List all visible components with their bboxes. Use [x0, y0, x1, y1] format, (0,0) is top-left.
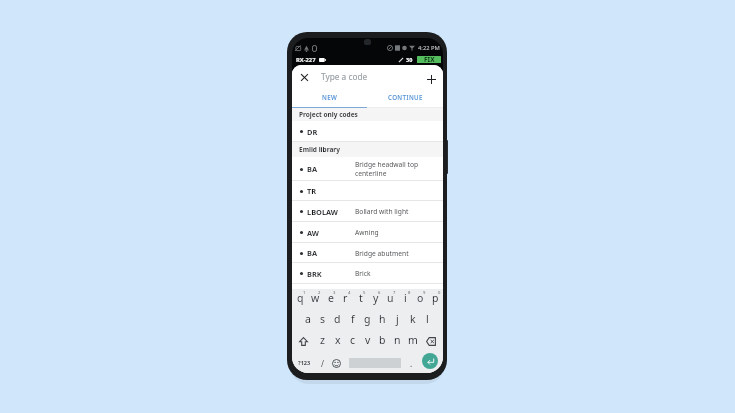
staticText: .: [410, 358, 413, 369]
button[interactable]: BA: [292, 243, 443, 263]
button[interactable]: t: [353, 289, 368, 310]
button[interactable]: v: [360, 331, 375, 353]
staticText: i: [404, 291, 407, 305]
staticText: a: [305, 312, 311, 326]
button[interactable]: n: [390, 331, 405, 353]
button[interactable]: .: [401, 353, 419, 373]
button[interactable]: a: [300, 310, 315, 331]
staticText: NEW: [322, 93, 338, 101]
button[interactable]: s: [315, 310, 330, 331]
staticText: z: [320, 333, 325, 347]
staticText: g: [364, 312, 371, 326]
staticText: 7: [393, 290, 396, 296]
staticText: 2: [318, 290, 321, 296]
button[interactable]: i: [398, 289, 413, 310]
staticText: y: [373, 291, 379, 305]
staticText: TR: [307, 186, 355, 196]
button[interactable]: ?123: [292, 353, 316, 373]
button[interactable]: NEW: [292, 88, 367, 107]
button[interactable]: m: [405, 331, 420, 353]
staticText: l: [426, 312, 429, 326]
button[interactable]: f: [345, 310, 360, 331]
button[interactable]: LBOLAW: [292, 201, 443, 222]
staticText: Project only codes: [299, 110, 358, 119]
staticText: Bollard with light: [355, 207, 409, 216]
staticText: j: [396, 312, 399, 326]
staticText: FIX: [424, 56, 435, 62]
button[interactable]: x: [330, 331, 345, 353]
staticText: CONTINUE: [388, 93, 423, 101]
staticText: 9: [423, 290, 426, 296]
staticText: t: [359, 291, 363, 305]
button[interactable]: b: [375, 331, 390, 353]
staticText: 3: [333, 290, 336, 296]
button[interactable]: z: [315, 331, 330, 353]
staticText: o: [417, 291, 424, 305]
staticText: q: [297, 291, 304, 305]
staticText: e: [328, 291, 334, 305]
button[interactable]: BA: [292, 157, 443, 181]
staticText: 5: [363, 290, 366, 296]
staticText: LBOLAW: [307, 207, 355, 217]
staticText: r: [343, 291, 348, 305]
button[interactable]: k: [405, 310, 420, 331]
staticText: 0: [438, 290, 441, 296]
staticText: BA: [307, 248, 355, 258]
button[interactable]: TR: [292, 181, 443, 201]
button[interactable]: e: [323, 289, 338, 310]
staticText: v: [365, 333, 371, 347]
staticText: k: [410, 312, 416, 326]
staticText: w: [311, 291, 320, 305]
button[interactable]: q: [292, 289, 308, 310]
button[interactable]: d: [330, 310, 345, 331]
button[interactable]: u: [383, 289, 398, 310]
staticText: DR: [307, 127, 355, 137]
button[interactable]: Add code: [425, 71, 437, 83]
staticText: u: [387, 291, 394, 305]
button[interactable]: w: [308, 289, 323, 310]
button[interactable]: o: [413, 289, 428, 310]
button[interactable]: AW: [292, 222, 443, 243]
staticText: /: [321, 358, 324, 369]
button[interactable]: c: [345, 331, 360, 353]
button[interactable]: Shift: [292, 331, 315, 353]
button[interactable]: Close: [298, 71, 310, 83]
staticText: 8: [408, 290, 411, 296]
staticText: 6: [378, 290, 381, 296]
staticText: Brick: [355, 269, 371, 278]
staticText: d: [334, 312, 341, 326]
button[interactable]: BRK: [292, 263, 443, 284]
button[interactable]: h: [375, 310, 390, 331]
staticText: Emlid library: [299, 145, 340, 154]
staticText: BRK: [307, 269, 355, 279]
button[interactable]: CONTINUE: [367, 88, 443, 107]
button[interactable]: j: [390, 310, 405, 331]
button[interactable]: /: [316, 353, 329, 373]
button[interactable]: g: [360, 310, 375, 331]
button[interactable]: r: [338, 289, 353, 310]
staticText: p: [432, 291, 439, 305]
button[interactable]: FIX: [417, 56, 441, 63]
staticText: c: [350, 333, 356, 347]
staticText: 1: [303, 290, 306, 296]
staticText: Awning: [355, 228, 379, 237]
button[interactable]: Backspace: [420, 331, 443, 353]
button[interactable]: l: [420, 310, 435, 331]
staticText: Bridge abutment: [355, 249, 409, 258]
button[interactable]: y: [368, 289, 383, 310]
staticText: 30: [406, 56, 413, 63]
staticText: 4: [348, 290, 351, 296]
staticText: s: [320, 312, 326, 326]
staticText: AW: [307, 228, 355, 238]
button[interactable]: Emoji: [329, 353, 343, 373]
staticText: h: [379, 312, 386, 326]
staticText: Type a code: [321, 71, 368, 82]
button[interactable]: Enter: [422, 353, 438, 369]
staticText: BA: [307, 164, 355, 174]
staticText: RX-227: [296, 56, 316, 64]
button[interactable]: p: [428, 289, 443, 310]
staticText: 4:22 PM: [418, 44, 440, 52]
staticText: x: [335, 333, 341, 347]
button[interactable]: DR: [292, 121, 443, 142]
